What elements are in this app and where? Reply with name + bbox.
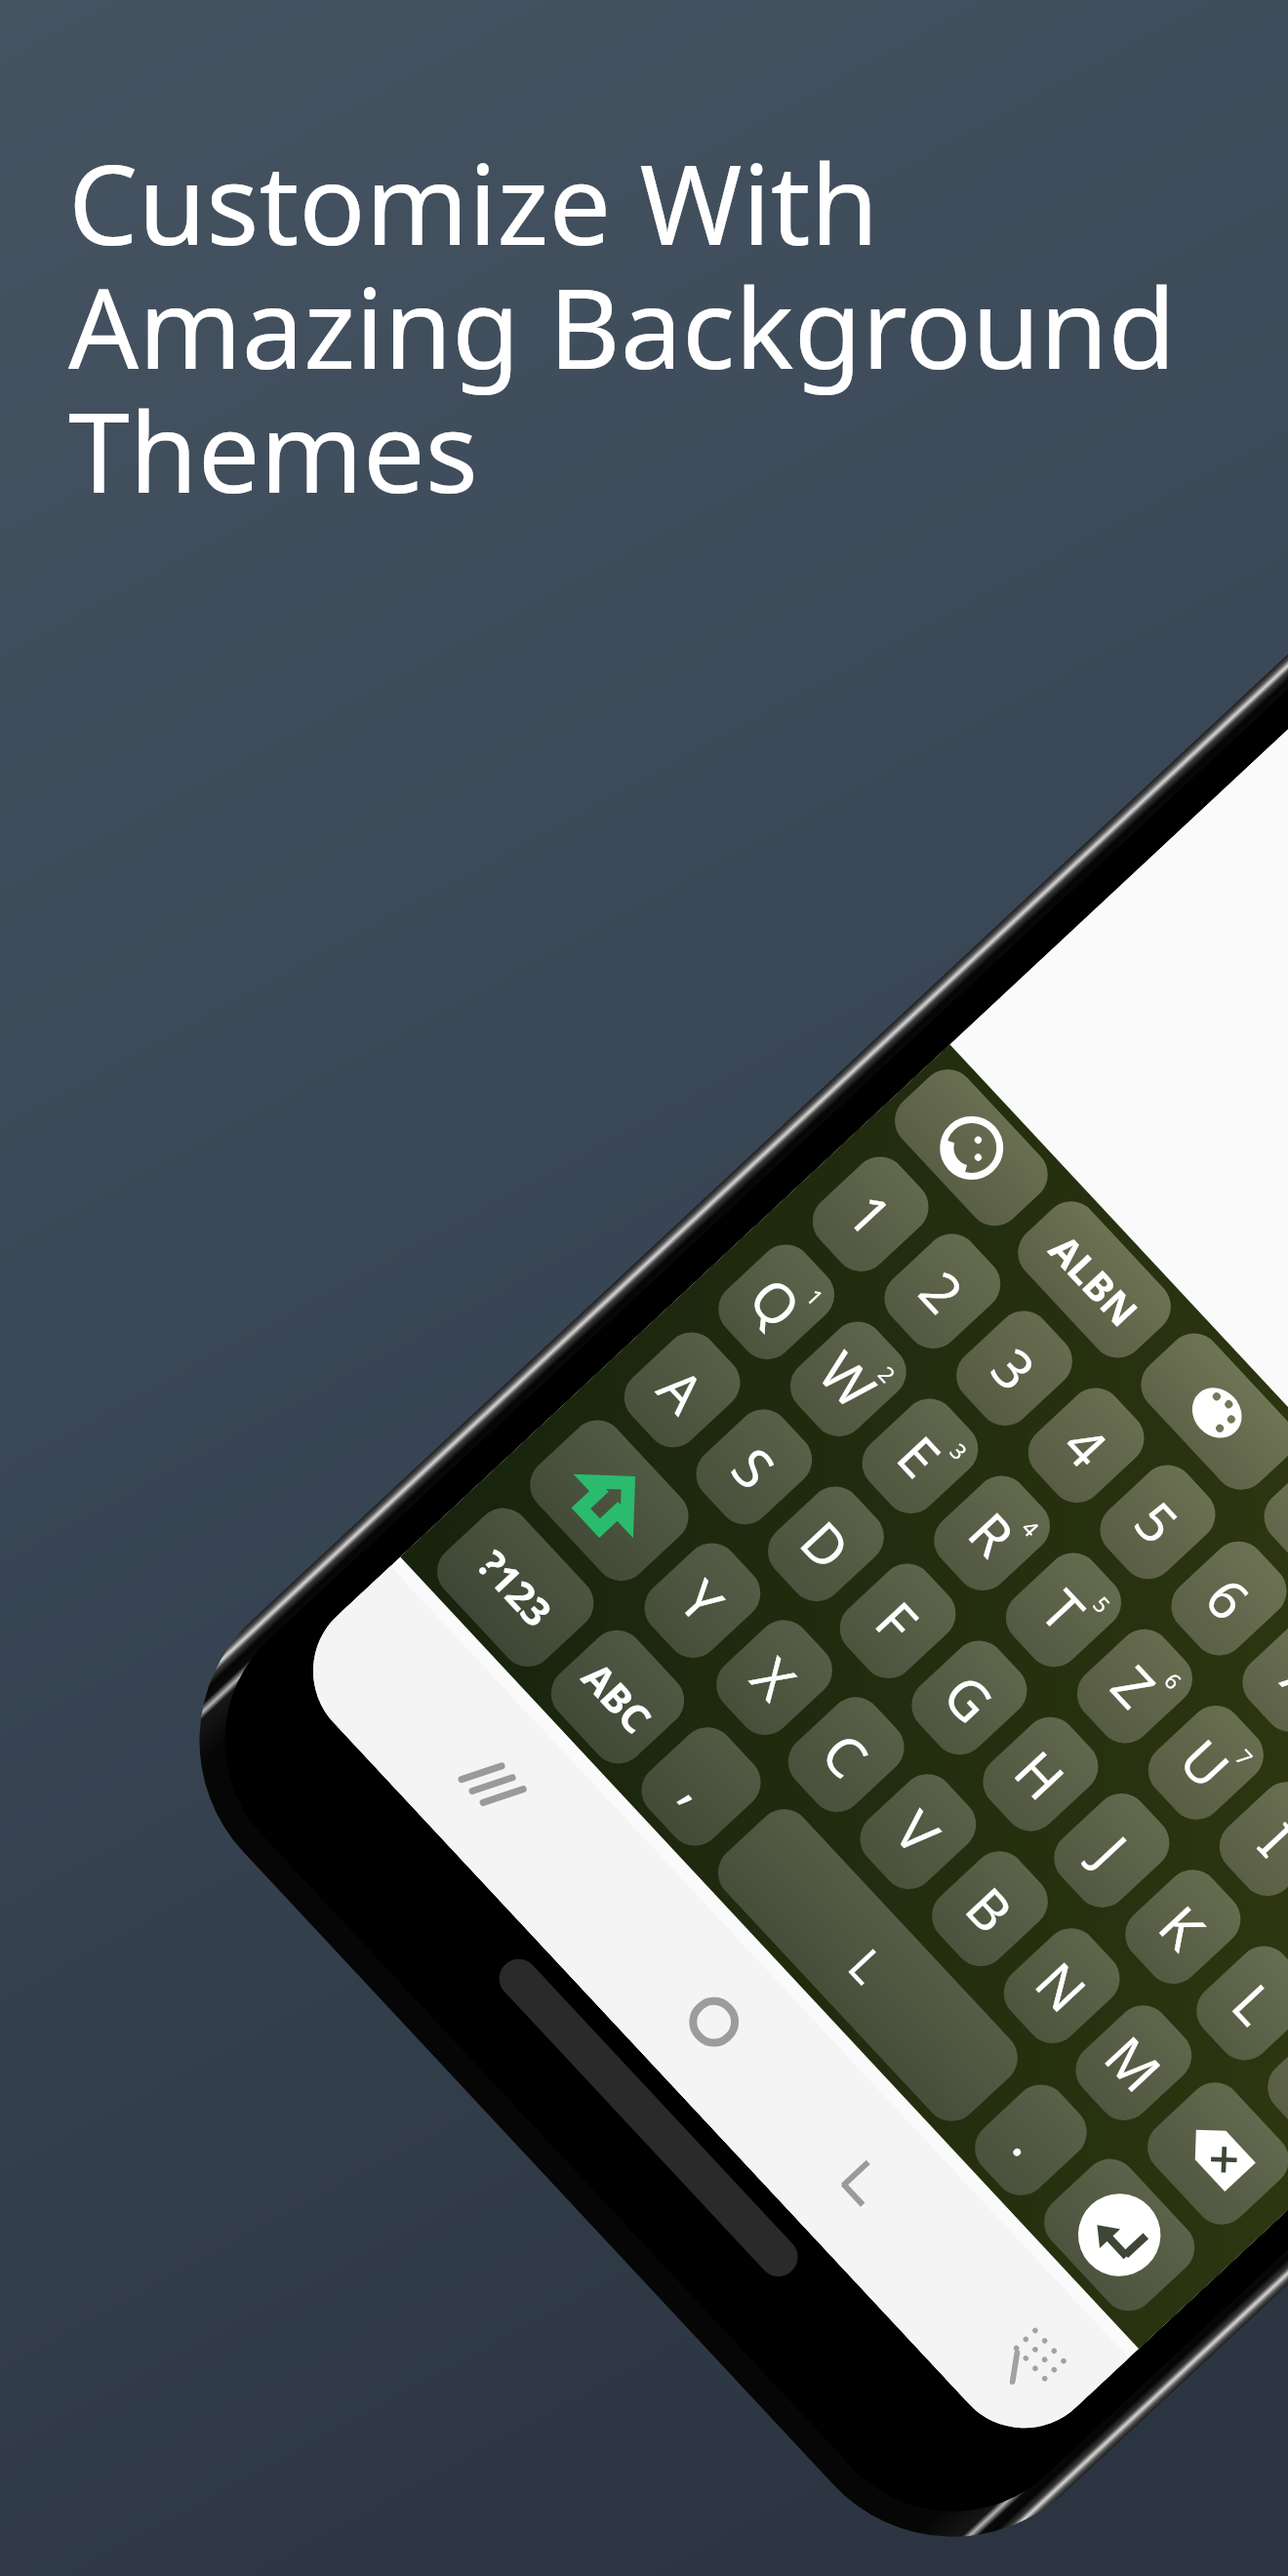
button[interactable]: O [1279,1847,1288,1984]
button[interactable]: C [777,1686,915,1823]
button[interactable]: L [1185,1935,1288,2072]
button[interactable]: Hide keyboard [969,2300,1093,2424]
button[interactable]: Y [633,1532,772,1669]
staticText: 4 [1016,1513,1046,1543]
button[interactable]: X [705,1609,844,1746]
staticText: J [1080,1820,1144,1882]
staticText: Y [665,1564,740,1637]
button[interactable]: ABC [540,1619,696,1775]
staticText: ABC [572,1650,664,1743]
button[interactable]: A [613,1321,751,1458]
staticText: R [954,1496,1031,1571]
button[interactable]: ALBN [1007,1190,1182,1369]
button[interactable]: M [1064,1994,1203,2131]
staticText: F [861,1585,935,1657]
staticText: T [1026,1574,1102,1647]
button[interactable]: I [1208,1771,1288,1907]
button[interactable]: W [779,1310,918,1448]
staticText: 3 [944,1436,974,1466]
button[interactable]: 5 [1089,1454,1227,1590]
button[interactable]: ?123 [426,1497,605,1678]
staticText: H [1000,1734,1082,1815]
button[interactable]: Backspace [1136,2071,1288,2236]
staticText: V [880,1794,957,1869]
staticText: D [785,1504,867,1584]
staticText: , [669,1756,734,1818]
staticText: 7 [1230,1743,1260,1772]
button[interactable]: L [707,1798,1029,2132]
staticText: C [807,1716,885,1793]
button[interactable] [1253,1454,1288,1633]
staticText: W [804,1335,893,1424]
button[interactable]: Shift [519,1409,700,1592]
staticText: K [1144,1889,1222,1965]
staticText: Q [735,1261,818,1343]
button[interactable]: 7 [1231,1606,1288,1743]
button[interactable]: 6 [1160,1530,1288,1667]
staticText: 2 [872,1359,902,1389]
button[interactable]: Recent apps [430,1722,554,1846]
staticText: I [1244,1807,1288,1871]
staticText: X [737,1641,813,1715]
button[interactable]: Home [648,1956,780,2088]
button[interactable]: Q [707,1233,846,1371]
staticText: ALBN [1039,1223,1151,1337]
button[interactable]: R [923,1465,1061,1602]
staticText: Z [1097,1649,1173,1723]
button[interactable]: Emoji [884,1058,1059,1237]
button[interactable]: , [630,1716,772,1857]
staticText: 6 [1159,1666,1189,1695]
staticText: N [1021,1945,1104,2027]
staticText: ?123 [467,1538,564,1637]
button[interactable]: G [900,1629,1038,1766]
button[interactable]: Theme [1130,1322,1288,1501]
button[interactable]: 4 [1017,1377,1155,1514]
button[interactable]: Z [1066,1618,1204,1755]
staticText: 4 [1048,1409,1125,1483]
staticText: 1 [801,1282,831,1311]
staticText: B [951,1871,1030,1948]
staticText: . [998,2109,1063,2171]
staticText: E [882,1419,958,1493]
staticText: 5 [1087,1590,1117,1619]
button[interactable]: N [993,1917,1131,2054]
staticText: S [717,1431,792,1504]
staticText: M [1090,2020,1178,2107]
button[interactable]: B [921,1840,1059,1977]
staticText: 3 [977,1332,1053,1406]
staticText: A [643,1352,721,1428]
button[interactable]: Enter [1033,2148,1206,2322]
button[interactable]: H [972,1706,1109,1842]
button[interactable]: E [851,1387,989,1525]
button[interactable]: D [757,1475,895,1613]
staticText: L [836,1935,899,1996]
staticText: 2 [905,1255,981,1329]
button[interactable]: . [964,2073,1098,2207]
button[interactable]: 2 [873,1223,1012,1360]
button[interactable]: 3 [945,1300,1084,1437]
button[interactable]: T [995,1542,1132,1678]
button[interactable]: S [685,1398,823,1536]
staticText: L [1217,1968,1288,2040]
button[interactable]: V [849,1763,987,1900]
button[interactable]: 1 [801,1145,940,1283]
staticText: 1 [833,1177,909,1252]
staticText: 6 [1191,1561,1267,1636]
button[interactable]: U [1137,1694,1275,1831]
staticText: 5 [1120,1485,1196,1559]
staticText: U [1165,1723,1247,1803]
button[interactable]: K [1114,1859,1252,1995]
staticText: G [929,1658,1010,1738]
button[interactable]: F [829,1552,967,1690]
staticText: 7 [1262,1638,1288,1712]
button[interactable]: ‹ [1256,2011,1288,2148]
staticText: Customize With Amazing Background Themes [68,127,1177,525]
button[interactable]: J [1043,1782,1181,1919]
